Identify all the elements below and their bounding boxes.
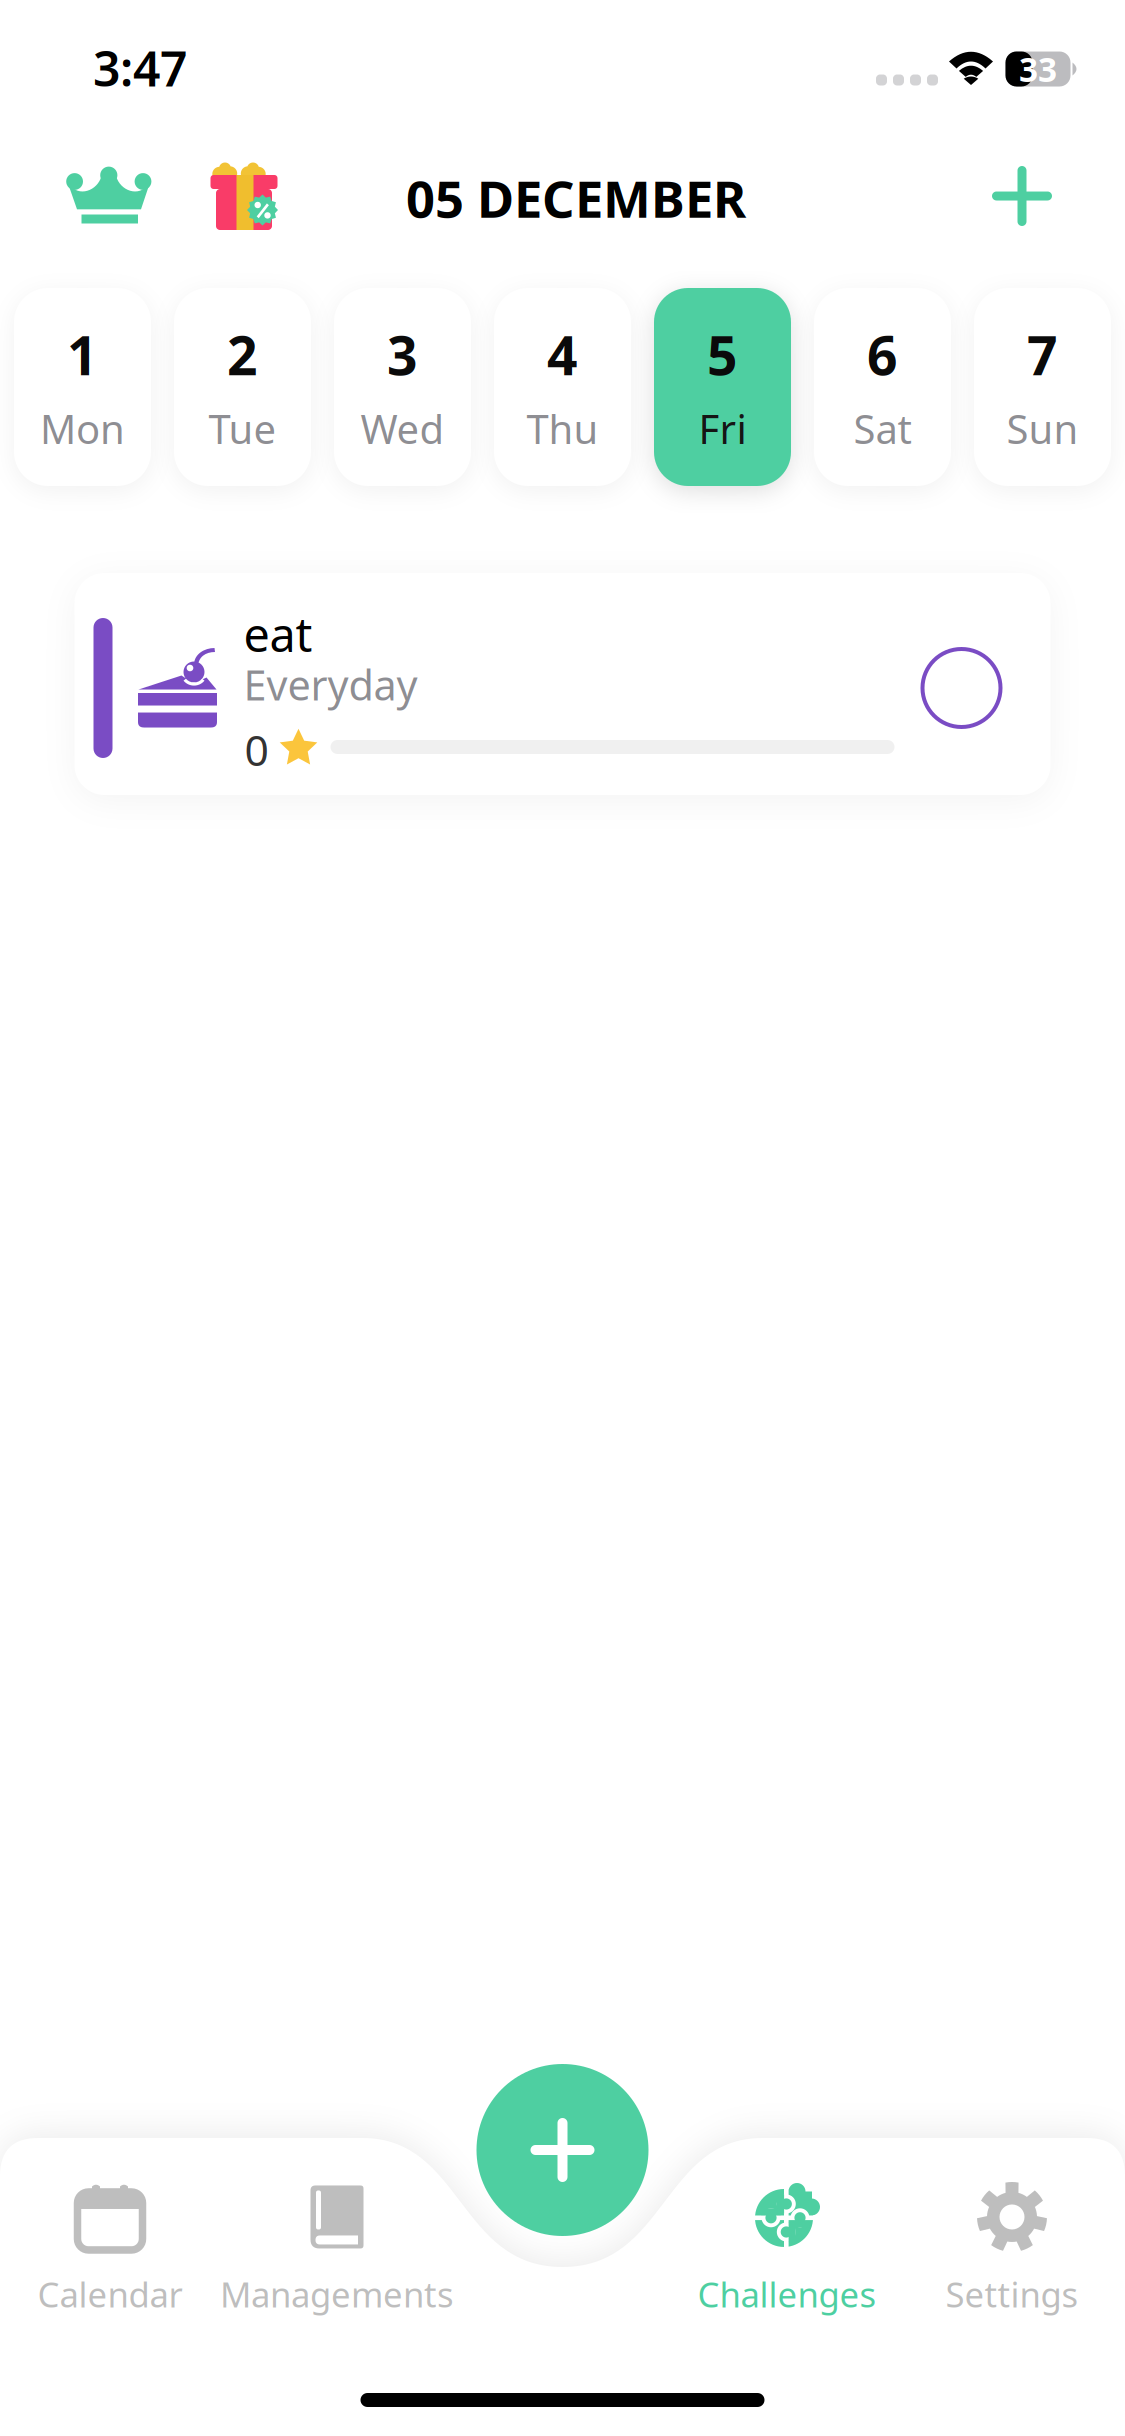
staticText: 6 <box>867 319 898 390</box>
button[interactable]: 1 <box>14 288 151 486</box>
button[interactable]: 5 <box>654 288 791 486</box>
staticText: 4 <box>547 319 578 390</box>
staticText: 3 <box>387 319 418 390</box>
staticText: Managements <box>220 2271 454 2317</box>
button[interactable]: 3 <box>334 288 471 486</box>
staticText: 0 <box>244 721 268 778</box>
button[interactable]: Add <box>967 148 1077 244</box>
button[interactable]: Challenges <box>667 2169 907 2329</box>
staticText: eat <box>243 603 312 665</box>
staticText: Mon <box>40 402 125 455</box>
button[interactable]: 4 <box>494 288 631 486</box>
button[interactable]: 7 <box>974 288 1111 486</box>
staticText: Tue <box>208 402 276 455</box>
button[interactable]: Offers <box>184 148 304 244</box>
staticText: Everyday <box>243 657 417 712</box>
staticText: Wed <box>360 402 444 455</box>
staticText: 3:47 <box>93 36 187 100</box>
button[interactable]: Managements <box>217 2169 457 2329</box>
button[interactable]: 6 <box>814 288 951 486</box>
staticText: 1 <box>67 319 98 390</box>
staticText: 5 <box>707 319 738 390</box>
button[interactable]: Settings <box>892 2169 1125 2329</box>
staticText: Settings <box>945 2271 1078 2317</box>
button[interactable]: Add task <box>476 2064 648 2236</box>
button[interactable]: Premium <box>49 148 169 244</box>
staticText: 2 <box>227 319 258 390</box>
staticText: Challenges <box>697 2271 876 2317</box>
button[interactable]: 2 <box>174 288 311 486</box>
staticText: 05 DECEMBER <box>406 164 746 232</box>
staticText: 7 <box>1027 319 1058 390</box>
staticText: Sat <box>853 402 911 455</box>
staticText: Fri <box>698 402 746 455</box>
button[interactable]: Calendar <box>0 2169 230 2329</box>
staticText: Thu <box>526 402 598 455</box>
staticText: Sun <box>1006 402 1078 455</box>
button[interactable]: eat <box>74 573 1050 795</box>
staticText: 33 <box>1019 47 1057 91</box>
staticText: Calendar <box>37 2271 182 2317</box>
